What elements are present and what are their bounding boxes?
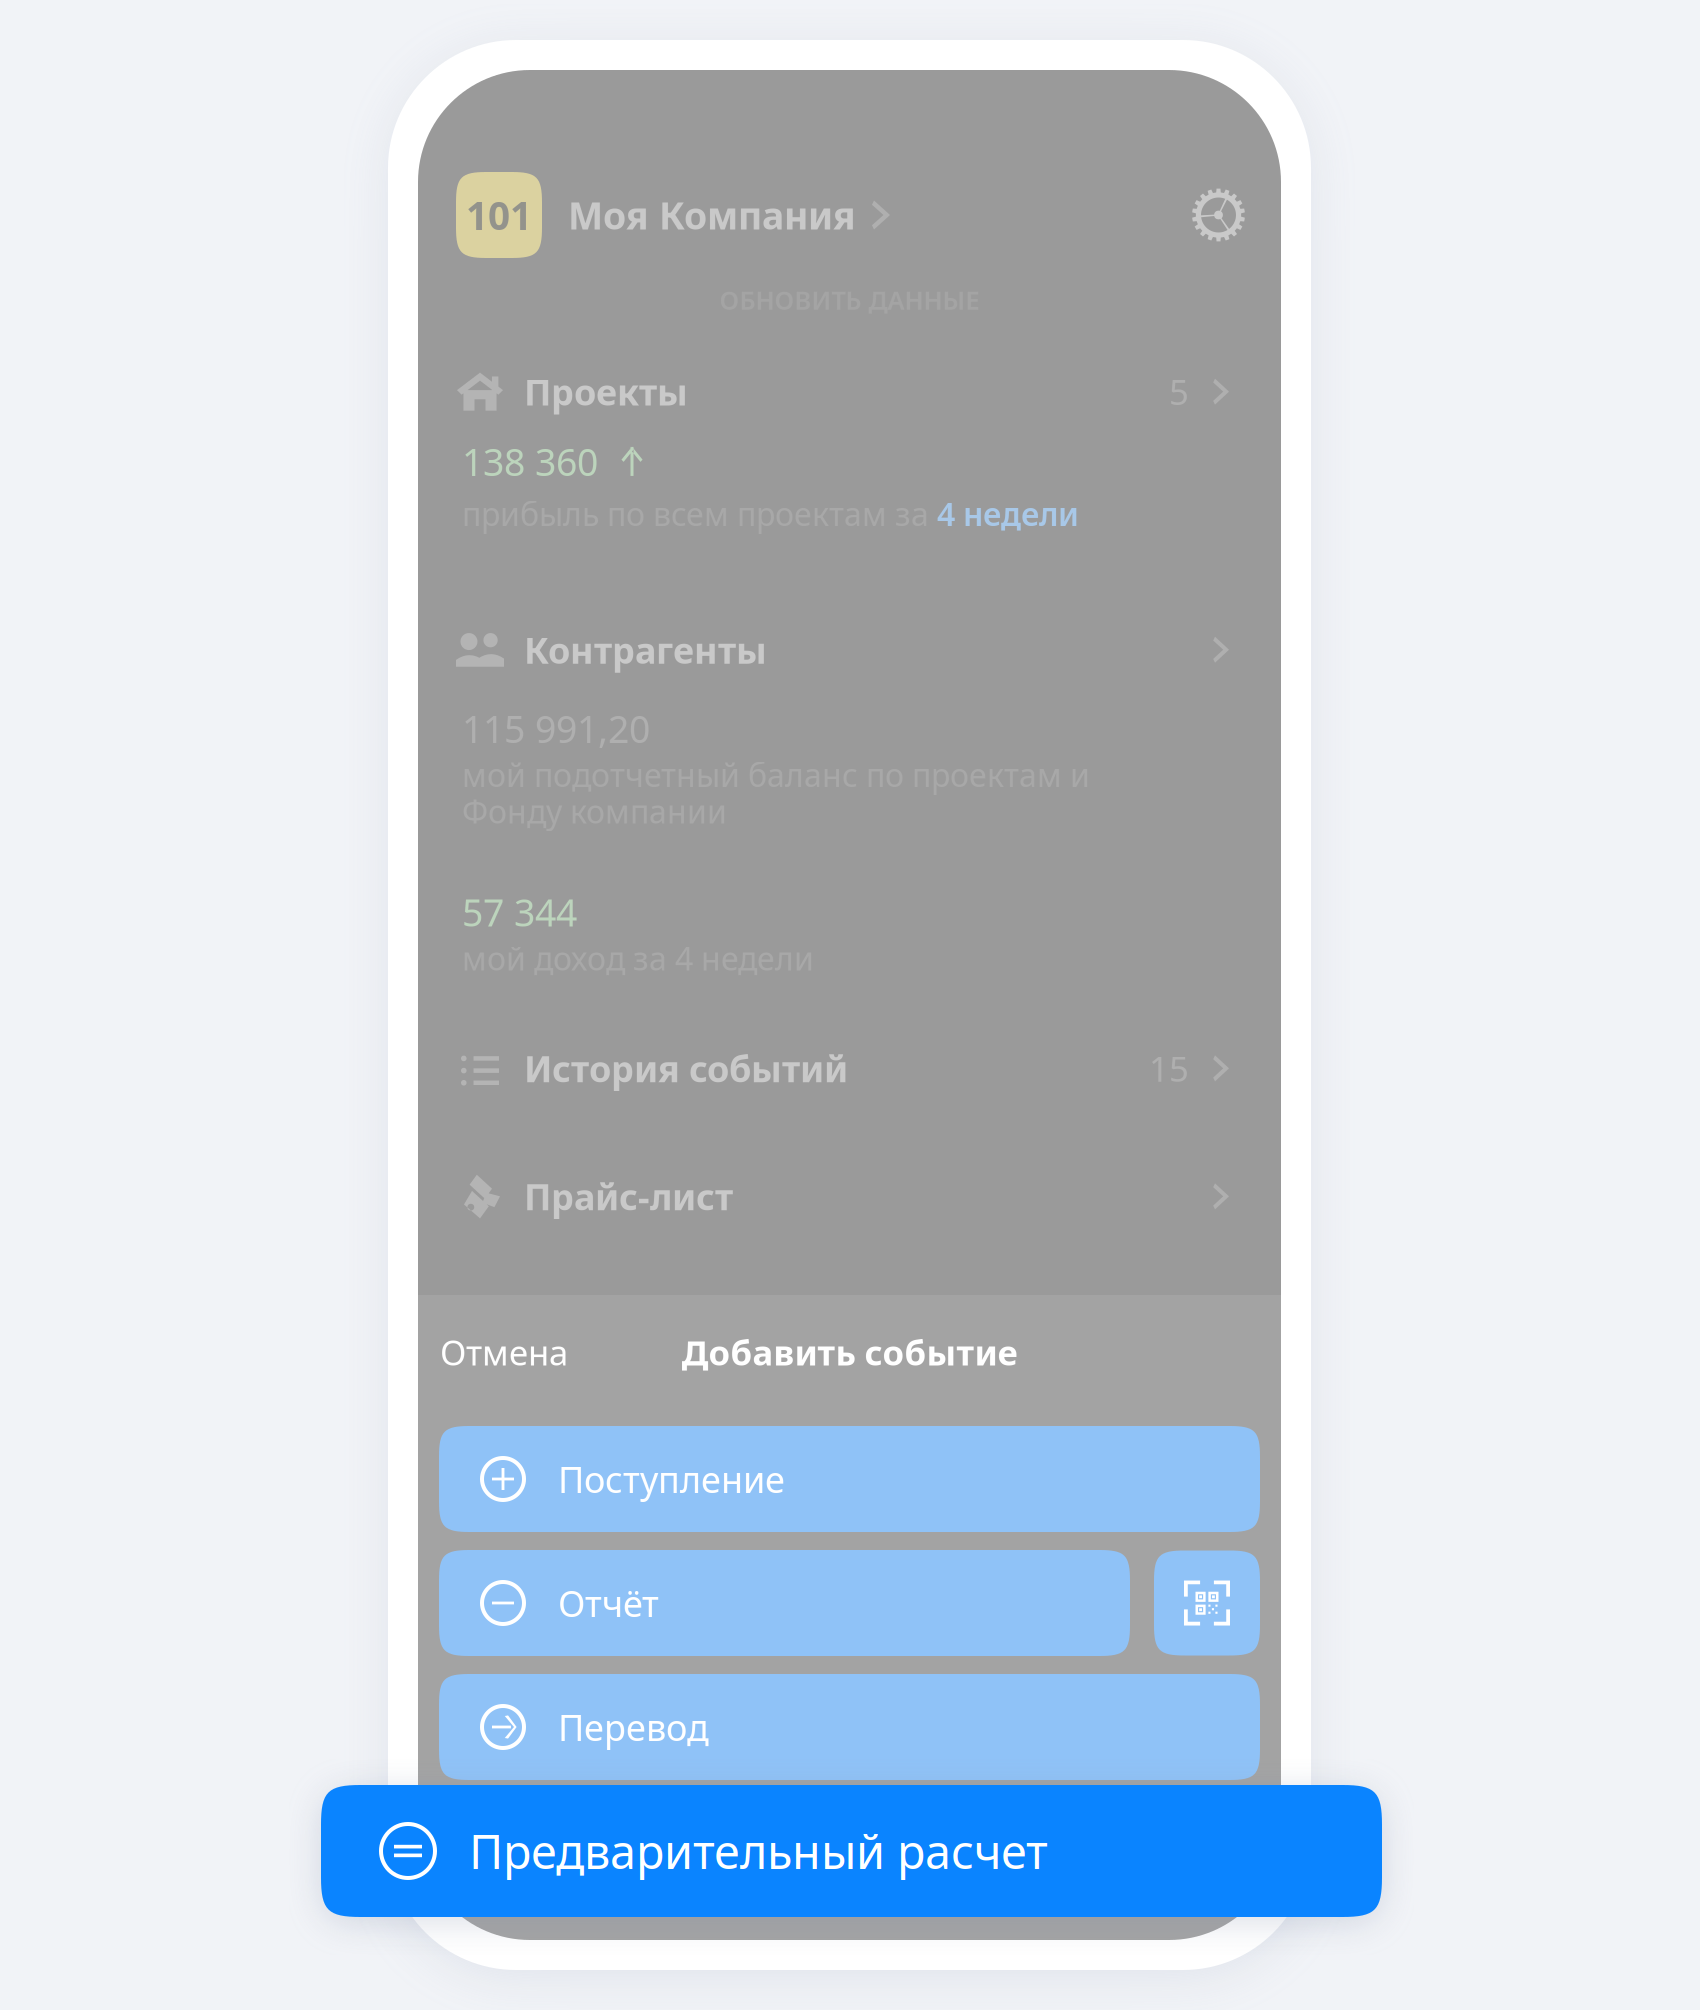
button[interactable]: Проекты [454, 368, 1229, 416]
staticText: Отчёт [558, 1579, 659, 1627]
button[interactable]: Перевод [439, 1674, 1260, 1780]
staticText: 101 [466, 189, 532, 241]
button[interactable]: Поступление [439, 1426, 1260, 1532]
staticText: 4 недели [937, 492, 1079, 535]
button[interactable]: Отчёт [439, 1550, 1130, 1656]
staticText: Отмена [440, 1329, 568, 1375]
staticText: Проекты [524, 368, 688, 415]
staticText: ОБНОВИТЬ ДАННЫЕ [719, 283, 979, 317]
staticText: Поступление [558, 1455, 785, 1503]
button[interactable]: Сканировать QR-код [1154, 1550, 1260, 1655]
staticText: Добавить событие [681, 1329, 1017, 1375]
staticText: прибыль по всем проектам за [462, 492, 937, 535]
button[interactable]: История событий [454, 1044, 1229, 1092]
staticText: История событий [524, 1044, 848, 1092]
staticText: 138 360 [462, 437, 598, 486]
staticText: 57 344 [462, 887, 577, 937]
button[interactable]: Предварительный расчет [321, 1785, 1382, 1917]
staticText: Предварительный расчет [469, 1820, 1048, 1882]
staticText: Контрагенты [524, 626, 767, 674]
button[interactable]: Отмена [428, 1317, 580, 1387]
staticText: 115 991,20 [462, 704, 650, 753]
staticText: 5 [1169, 369, 1189, 415]
button[interactable]: Настройки [1192, 188, 1245, 241]
staticText: Перевод [558, 1703, 709, 1751]
staticText: мой доход за 4 недели [462, 937, 814, 979]
button[interactable]: Прайс-лист [454, 1172, 1229, 1220]
staticText: мой подотчетный баланс по проектам и Фон… [462, 753, 1090, 832]
staticText: Моя Компания [568, 190, 856, 240]
button[interactable]: Контрагенты [454, 626, 1229, 674]
staticText: Прайс-лист [524, 1172, 733, 1220]
staticText: 15 [1149, 1045, 1189, 1091]
button[interactable]: 101 [456, 172, 890, 258]
